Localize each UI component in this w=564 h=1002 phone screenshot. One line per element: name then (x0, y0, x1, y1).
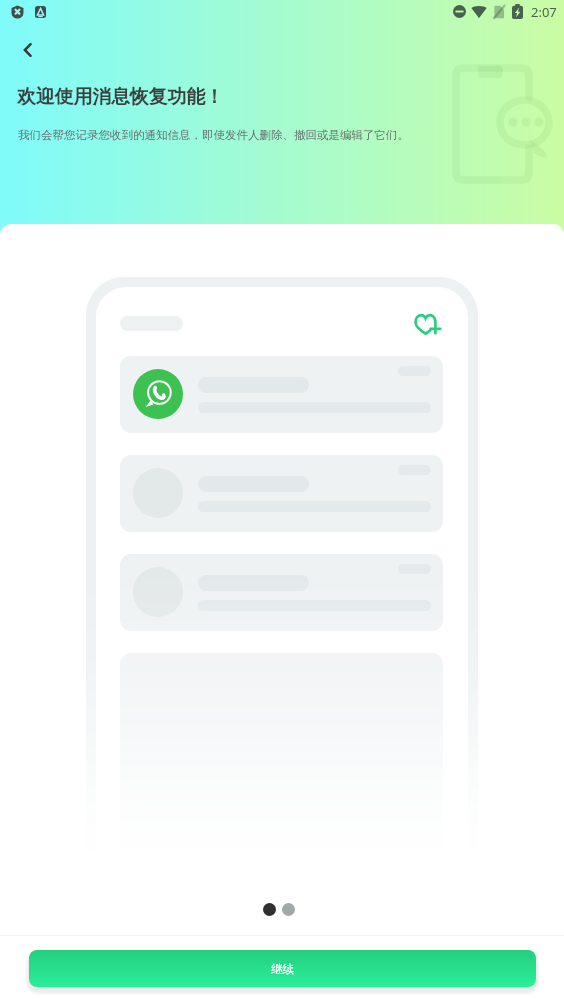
button[interactable]: 继续 (29, 950, 536, 987)
button[interactable] (120, 455, 443, 532)
staticText: 2:07 (531, 3, 557, 21)
staticText: 我们会帮您记录您收到的通知信息，即使发件人删除、撤回或是编辑了它们。 (18, 128, 564, 142)
button[interactable] (120, 554, 443, 631)
staticText: 欢迎使用消息恢复功能！ (17, 85, 224, 109)
button[interactable]: Page 2 (282, 903, 295, 916)
button[interactable] (120, 356, 443, 433)
button[interactable]: Add to favorites (415, 312, 441, 336)
staticText: 继续 (271, 962, 294, 976)
button[interactable]: Page 1 (263, 903, 276, 916)
button[interactable]: Back (11, 34, 43, 66)
